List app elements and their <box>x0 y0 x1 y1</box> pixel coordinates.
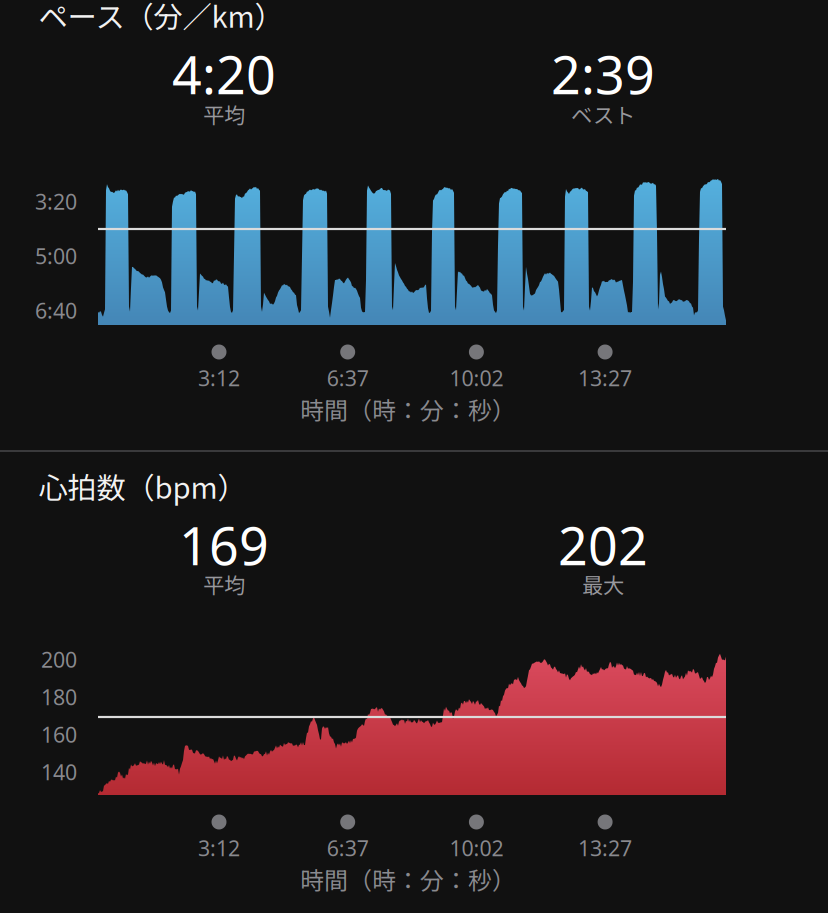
staticText: 6:37 <box>327 364 369 392</box>
staticText: 平均 <box>203 99 245 129</box>
staticText: ベスト <box>571 99 635 129</box>
staticText: 202 <box>558 510 648 580</box>
staticText: 140 <box>41 758 77 786</box>
staticText: 180 <box>41 683 77 711</box>
staticText: 時間（時：分：秒） <box>300 862 516 896</box>
staticText: 160 <box>41 720 77 749</box>
staticText: 3:20 <box>35 187 77 216</box>
staticText: 時間（時：分：秒） <box>300 392 516 426</box>
staticText: 3:12 <box>198 364 240 392</box>
staticText: 169 <box>179 510 269 580</box>
staticText: 10:02 <box>449 364 503 392</box>
staticText: 2:39 <box>551 39 655 109</box>
staticText: 200 <box>41 645 77 674</box>
staticText: 13:27 <box>578 364 632 392</box>
staticText: 4:20 <box>172 39 276 109</box>
staticText: 6:40 <box>35 296 77 325</box>
staticText: 最大 <box>582 569 624 599</box>
staticText: 3:12 <box>198 834 240 862</box>
staticText: 13:27 <box>578 834 632 862</box>
staticText: ペース（分／km） <box>38 0 283 36</box>
staticText: 心拍数（bpm） <box>38 465 246 507</box>
staticText: 5:00 <box>35 242 77 270</box>
staticText: 平均 <box>203 569 245 599</box>
staticText: 10:02 <box>449 834 503 862</box>
staticText: 6:37 <box>327 834 369 862</box>
